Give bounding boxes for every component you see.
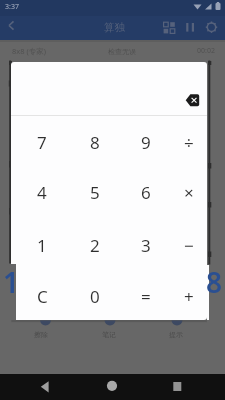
button[interactable]: 7 bbox=[19, 119, 65, 165]
staticText: 8x8 (专家) bbox=[12, 46, 46, 56]
button[interactable]: 2 bbox=[72, 222, 118, 268]
staticText: × bbox=[184, 181, 194, 204]
staticText: 2 bbox=[90, 234, 100, 257]
button[interactable]: ÷ bbox=[166, 119, 212, 165]
staticText: 6 bbox=[141, 181, 151, 204]
staticText: 8 bbox=[90, 131, 100, 154]
staticText: 3:37 bbox=[5, 2, 19, 12]
staticText: 提示 bbox=[169, 330, 183, 339]
button[interactable]: 4 bbox=[19, 169, 65, 215]
button[interactable] bbox=[0, 16, 28, 40]
button[interactable]: − bbox=[166, 222, 212, 268]
staticText: 4 bbox=[37, 181, 47, 204]
staticText: 0 bbox=[90, 285, 100, 308]
button[interactable]: 8 bbox=[72, 119, 118, 165]
button[interactable]: + bbox=[166, 273, 212, 319]
staticText: 7 bbox=[37, 131, 47, 154]
staticText: 5 bbox=[90, 181, 100, 204]
staticText: 9 bbox=[141, 131, 151, 154]
staticText: 1 bbox=[37, 234, 47, 257]
button[interactable] bbox=[162, 376, 192, 398]
button[interactable] bbox=[97, 376, 127, 398]
button[interactable]: 3 bbox=[123, 222, 169, 268]
button[interactable]: 1 bbox=[19, 222, 65, 268]
button[interactable]: 擦除 bbox=[11, 319, 71, 349]
button[interactable]: = bbox=[123, 273, 169, 319]
button[interactable]: 提示 bbox=[146, 319, 206, 349]
staticText: 8 bbox=[206, 263, 223, 293]
staticText: 3 bbox=[141, 234, 151, 257]
button[interactable]: 0 bbox=[72, 273, 118, 319]
staticText: + bbox=[184, 285, 194, 308]
button[interactable]: × bbox=[166, 169, 212, 215]
button[interactable]: 5 bbox=[72, 169, 118, 215]
button[interactable]: 9 bbox=[123, 119, 169, 165]
staticText: 擦除 bbox=[34, 330, 48, 339]
button[interactable] bbox=[30, 376, 60, 398]
staticText: ÷ bbox=[184, 131, 194, 154]
staticText: = bbox=[141, 285, 151, 308]
staticText: 00:02 bbox=[197, 46, 215, 56]
staticText: − bbox=[184, 234, 194, 257]
staticText: 笔记 bbox=[102, 330, 116, 339]
staticText: C bbox=[37, 285, 48, 308]
button[interactable]: C bbox=[19, 273, 65, 319]
button[interactable] bbox=[201, 16, 225, 40]
button[interactable] bbox=[159, 16, 180, 40]
staticText: 1 bbox=[3, 263, 20, 293]
button[interactable]: 6 bbox=[123, 169, 169, 215]
button[interactable] bbox=[180, 89, 205, 111]
button[interactable] bbox=[180, 16, 201, 40]
staticText: 算独 bbox=[104, 21, 125, 34]
staticText: 检查无误 bbox=[108, 47, 136, 56]
button[interactable]: 笔记 bbox=[79, 319, 139, 349]
